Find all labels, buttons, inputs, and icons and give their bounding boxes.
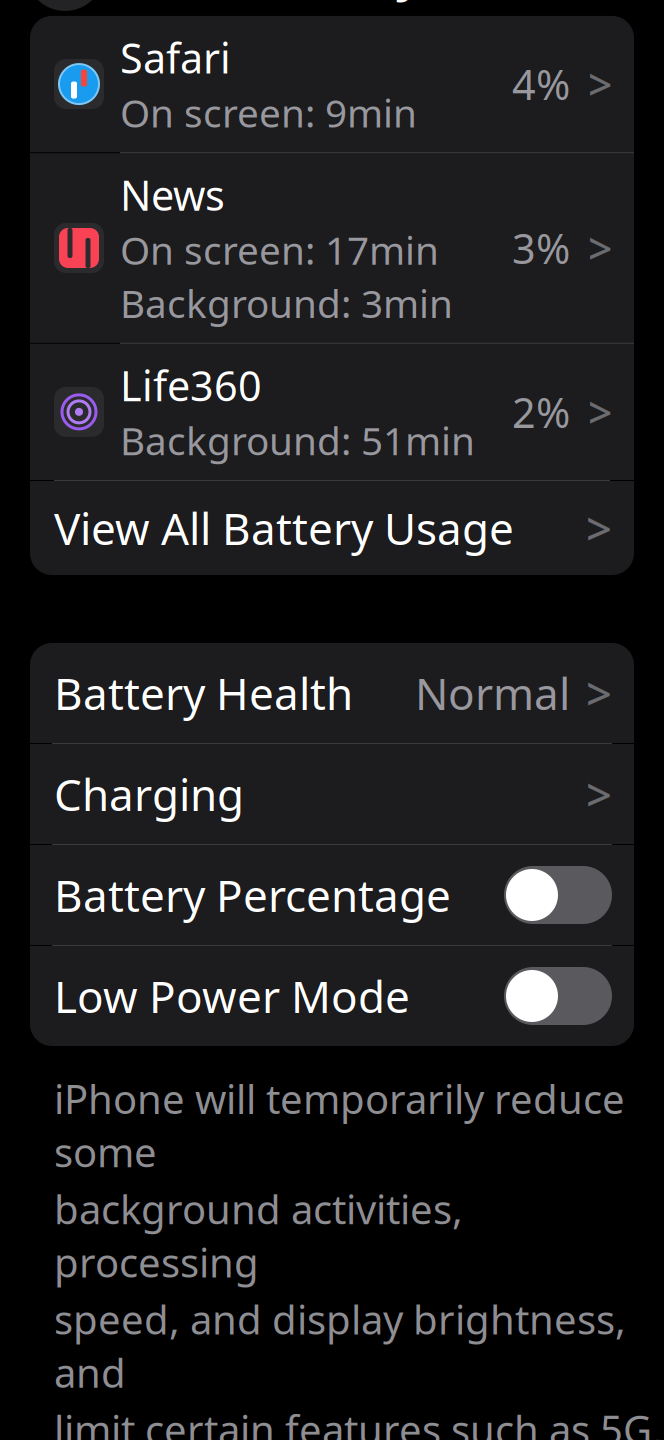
staticText: View All Battery Usage (54, 499, 514, 557)
staticText: 4% (512, 57, 570, 111)
staticText: Background: 3min (120, 277, 453, 329)
staticText: limit certain features such as 5G, (54, 1403, 663, 1440)
staticText: speed, and display brightness, and (54, 1292, 626, 1399)
staticText: > (588, 383, 612, 440)
staticText: On screen: 9min (120, 87, 417, 138)
button[interactable]: Back (26, 0, 104, 11)
staticText: iPhone will temporarily reduce some (54, 1072, 625, 1178)
staticText: Low Power Mode (54, 967, 410, 1025)
staticText: > (586, 764, 612, 824)
staticText: > (588, 56, 612, 112)
button[interactable]: Charging (30, 744, 634, 844)
staticText: > (588, 220, 612, 276)
button[interactable]: Safari (30, 16, 634, 152)
staticText: Background: 51min (120, 415, 475, 466)
staticText: News (120, 167, 225, 222)
button[interactable]: View All Battery Usage (30, 481, 634, 575)
staticText: > (586, 498, 612, 558)
staticText: Battery Health (54, 664, 353, 722)
button[interactable]: Life360 (30, 344, 634, 480)
button[interactable]: Low Power Mode (30, 946, 634, 1046)
staticText: Battery (242, 0, 422, 4)
staticText: ‹ (52, 0, 77, 19)
button[interactable]: Battery Health (30, 643, 634, 743)
button[interactable]: Battery Percentage (30, 845, 634, 945)
staticText: 3% (512, 220, 570, 275)
staticText: Battery Percentage (54, 866, 451, 924)
button[interactable]: News (30, 153, 634, 343)
staticText: > (586, 663, 612, 723)
staticText: On screen: 17min (120, 224, 439, 275)
staticText: Normal (415, 664, 570, 722)
staticText: Life360 (120, 358, 262, 413)
staticText: Charging (54, 765, 244, 823)
staticText: background activities, processing (54, 1182, 463, 1288)
staticText: Safari (120, 30, 231, 85)
staticText: 2% (512, 384, 570, 439)
